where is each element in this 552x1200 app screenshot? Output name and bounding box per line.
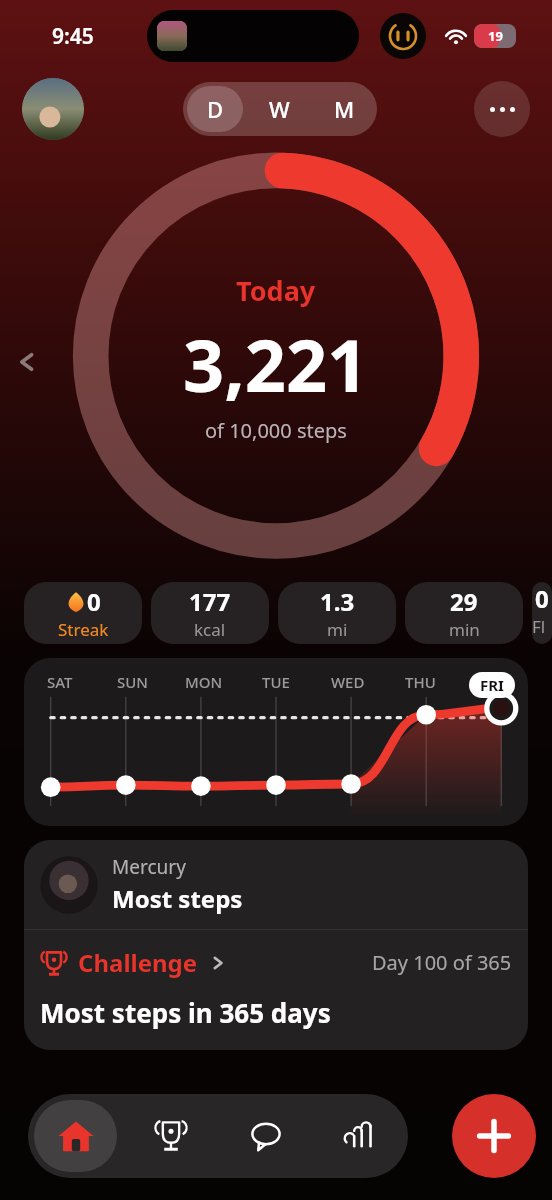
staticText: TUE [262,672,290,692]
staticText: SUN [117,672,148,692]
button[interactable]: 1.3 [278,582,396,644]
staticText: THU [405,672,436,692]
staticText: FRI [480,675,504,695]
button[interactable]: Challenges [123,1094,218,1178]
button[interactable]: Home [34,1100,117,1172]
button[interactable]: Add [452,1094,536,1178]
button[interactable]: D [187,86,243,132]
staticText: kcal [194,618,226,641]
button[interactable]: 177 [151,582,269,644]
staticText: Day 100 of 365 [372,949,512,976]
button[interactable]: More options [474,81,530,137]
staticText: Most steps [112,882,243,915]
staticText: 1.3 [320,585,355,618]
staticText: D [207,94,224,124]
staticText: 29 [450,585,478,618]
button[interactable]: 29 [405,582,523,644]
staticText: 19 [488,27,503,45]
button[interactable]: Previous day [14,349,40,375]
staticText: 9:45 [52,22,94,51]
staticText: mi [327,618,348,641]
staticText: 0 [87,585,101,618]
staticText: Streak [58,618,109,641]
staticText: M [334,94,355,124]
button[interactable]: W [251,86,308,132]
staticText: WED [331,672,365,692]
button[interactable]: 0 [24,582,142,644]
staticText: 0 [535,582,549,615]
staticText: of 10,000 steps [205,417,347,444]
staticText: MON [185,672,223,692]
button[interactable]: Stats [313,1094,408,1178]
staticText: Floors [532,615,552,644]
button[interactable]: M [316,86,373,132]
button[interactable]: SAT [24,658,528,826]
staticText: W [269,94,290,124]
staticText: 3,221 [183,315,369,413]
button[interactable]: 0 [532,582,552,644]
staticText: 177 [189,585,231,618]
staticText: min [449,618,480,641]
staticText: Challenge [78,946,198,979]
staticText: Most steps in 365 days [40,995,331,1030]
button[interactable]: Messages [218,1094,313,1178]
staticText: SAT [47,672,73,692]
staticText: Mercury [112,854,186,880]
button[interactable]: Mercury [24,840,528,1050]
staticText: Today [236,272,316,309]
button[interactable]: Profile [22,78,84,140]
